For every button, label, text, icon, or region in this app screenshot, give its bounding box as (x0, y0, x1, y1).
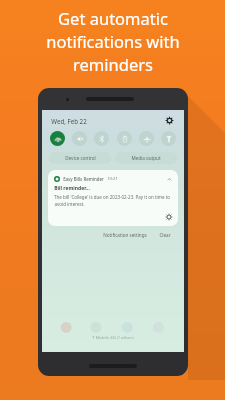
button[interactable]: Sound (72, 131, 87, 146)
button[interactable]: Wi-Fi (50, 131, 65, 146)
staticText: notifications with (46, 30, 180, 52)
button[interactable]: Clear (156, 230, 174, 240)
staticText: 10:21 (107, 176, 118, 182)
staticText: The bill 'College' is due on 2023-02-23.… (54, 194, 170, 200)
button[interactable]: Expand (165, 175, 173, 183)
staticText: T Mobile 4G // others (92, 335, 134, 341)
button[interactable]: Notification app settings (164, 212, 173, 221)
button[interactable]: Airplane mode (139, 131, 154, 146)
staticText: Device control (65, 155, 96, 161)
button[interactable]: Media output (115, 152, 177, 164)
button[interactable]: Easy Bills Reminder (48, 170, 178, 226)
button[interactable]: Bluetooth (94, 131, 109, 146)
staticText: Get automatic (58, 7, 168, 29)
button[interactable]: Notification settings (100, 230, 150, 240)
staticText: Notification settings (103, 232, 147, 238)
button[interactable]: Settings (164, 115, 175, 126)
staticText: Wed, Feb 22 (51, 117, 87, 125)
staticText: Easy Bills Reminder (63, 176, 104, 182)
button[interactable]: Battery saver (117, 131, 132, 146)
staticText: avoid interest. (54, 201, 85, 207)
button[interactable]: Device control (49, 152, 111, 164)
button[interactable]: Flashlight (161, 131, 176, 146)
staticText: Media output (131, 155, 161, 161)
staticText: Bill reminder... (54, 185, 90, 192)
staticText: Clear (159, 232, 171, 238)
staticText: reminders (73, 53, 153, 75)
